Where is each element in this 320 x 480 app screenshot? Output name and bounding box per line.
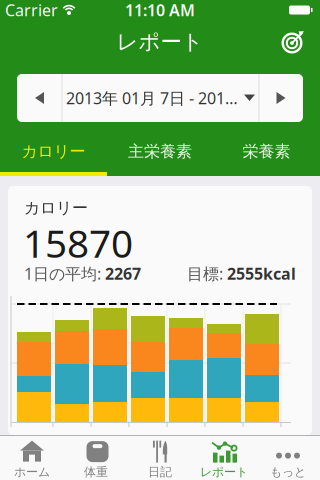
button[interactable]: 主栄養素 [107,122,213,176]
button[interactable]: 日記 [128,435,192,480]
staticText: 15870 [23,217,133,268]
staticText: 2267 [105,263,141,284]
staticText: レポート [116,29,203,55]
staticText: レポート [200,465,248,479]
button[interactable]: 栄養素 [213,122,320,176]
staticText: ホーム [14,465,50,479]
button[interactable]: ホーム [0,435,64,480]
button[interactable]: 2013年 01月 7日 - 201… [62,74,259,122]
button[interactable]: もっと [256,435,320,480]
staticText: 1日の平均: [24,263,105,284]
button[interactable]: 体重 [64,435,128,480]
staticText: Carrier [5,0,58,21]
button[interactable] [17,74,62,122]
staticText: カロリー [24,198,88,218]
button[interactable] [259,74,303,122]
staticText: もっと [270,465,306,479]
staticText: 体重 [84,465,108,479]
staticText: 2555kcal [227,263,296,284]
staticText: カロリー [21,142,85,161]
button[interactable]: カロリー [0,122,107,176]
staticText: 栄養素 [242,142,290,161]
staticText: 2013年 01月 7日 - 201… [66,87,238,109]
staticText: 目標: [187,263,227,284]
staticText: 日記 [148,465,172,479]
staticText: 主栄養素 [128,142,192,161]
staticText: 11:10 AM [125,0,195,21]
button[interactable] [277,27,307,57]
button[interactable]: レポート [192,435,256,480]
